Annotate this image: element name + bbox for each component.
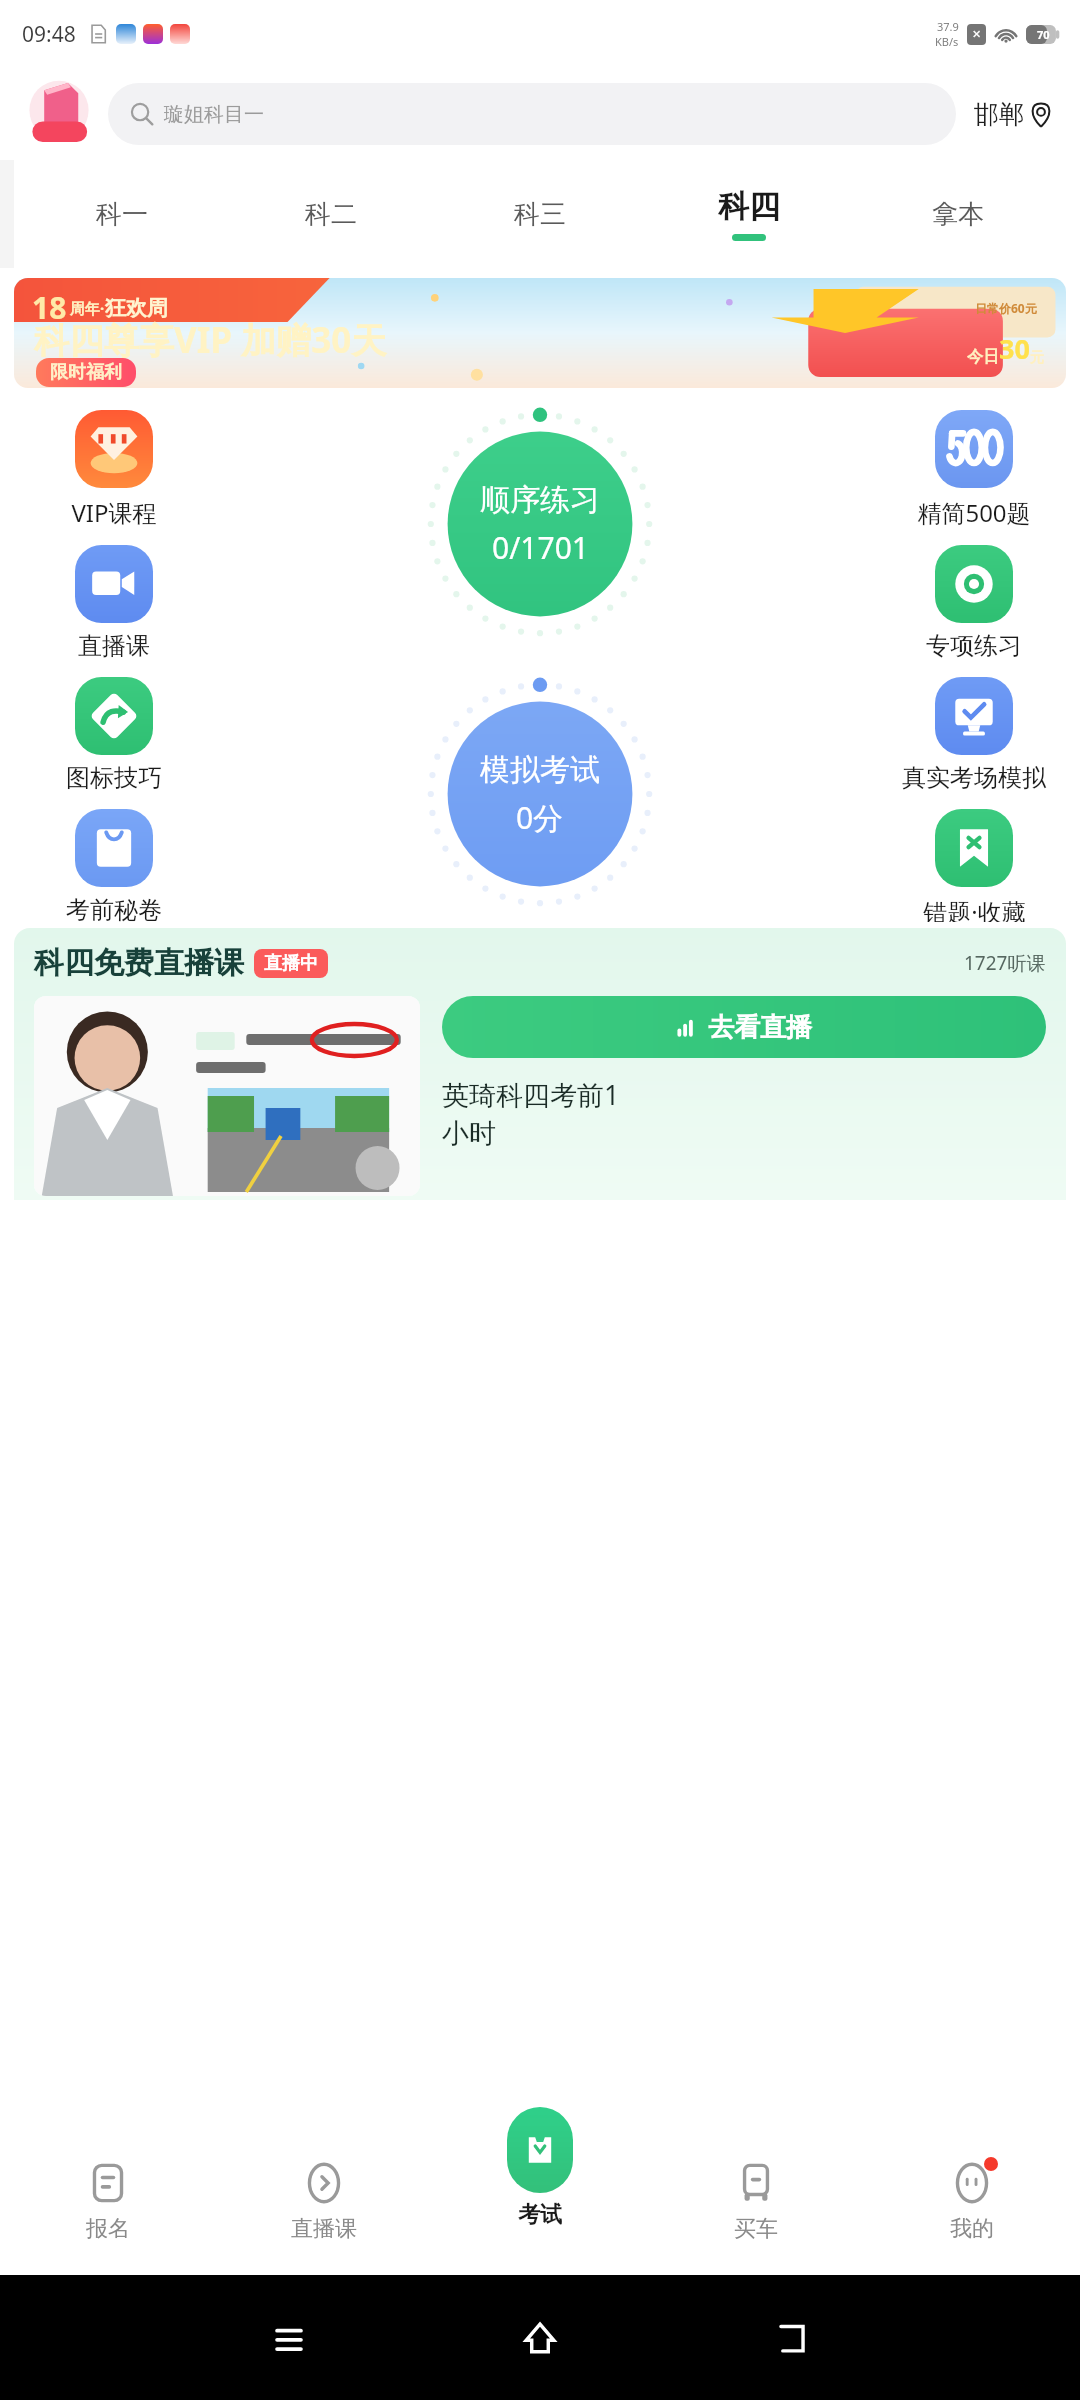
staticText: 买车 bbox=[734, 2215, 778, 2243]
button[interactable]: 报名 bbox=[0, 2125, 216, 2275]
button[interactable]: 图标技巧 bbox=[34, 677, 194, 793]
button[interactable]: 顺序练习 bbox=[420, 404, 660, 644]
button[interactable]: 科三 bbox=[435, 160, 644, 268]
staticText: 模拟考试 bbox=[480, 751, 600, 789]
button[interactable]: 科一 bbox=[18, 160, 226, 268]
staticText: 科四尊享VIP 加赠30天 bbox=[34, 316, 387, 364]
staticText: 元 bbox=[1030, 349, 1044, 367]
staticText: 日常价60元 bbox=[975, 300, 1037, 316]
staticText: 科三 bbox=[514, 198, 566, 231]
button[interactable]: 直播课 bbox=[216, 2125, 432, 2275]
staticText: 70 bbox=[1037, 27, 1050, 42]
staticText: 1727听课 bbox=[964, 950, 1046, 976]
staticText: 去看直播 bbox=[708, 1011, 812, 1044]
staticText: 直播课 bbox=[78, 631, 150, 661]
staticText: 报名 bbox=[86, 2215, 130, 2243]
staticText: 狂欢周 bbox=[105, 295, 168, 321]
button[interactable]: 真实考场模拟 bbox=[894, 677, 1054, 793]
button[interactable]: 模拟考试 bbox=[420, 674, 660, 914]
staticText: 18 bbox=[32, 287, 67, 328]
staticText: 考试 bbox=[518, 2201, 562, 2229]
staticText: 科四免费直播课 bbox=[34, 944, 244, 982]
staticText: 拿本 bbox=[932, 198, 984, 231]
button[interactable]: 科四免费领 bbox=[22, 77, 96, 151]
staticText: 直播中 bbox=[264, 952, 318, 975]
staticText: 精简500题 bbox=[917, 496, 1031, 529]
button[interactable]: 买车 bbox=[648, 2125, 864, 2275]
staticText: 直播课 bbox=[291, 2215, 357, 2243]
staticText: 0分 bbox=[516, 797, 564, 838]
button[interactable]: 科二 bbox=[226, 160, 435, 268]
staticText: VIP课程 bbox=[71, 496, 157, 529]
staticText: 图标技巧 bbox=[66, 763, 162, 793]
button[interactable]: 拿本 bbox=[853, 160, 1062, 268]
staticText: 科四 bbox=[718, 187, 780, 226]
staticText: 璇姐科目一 bbox=[164, 102, 264, 127]
staticText: KB/s bbox=[935, 34, 959, 49]
staticText: 顺序练习 bbox=[480, 481, 600, 519]
staticText: 专项练习 bbox=[926, 631, 1022, 661]
staticText: 37.9 bbox=[937, 19, 959, 34]
button[interactable]: 精简500题 bbox=[894, 410, 1054, 529]
staticText: 真实考场模拟 bbox=[902, 763, 1046, 793]
button[interactable]: 邯郸 bbox=[970, 95, 1058, 134]
staticText: 我的 bbox=[950, 2215, 994, 2243]
button[interactable]: 科四免费直播课 bbox=[14, 928, 1066, 1200]
staticText: 邯郸 bbox=[974, 99, 1024, 130]
button[interactable]: 考试 bbox=[507, 2107, 573, 2229]
button[interactable]: 考前秘卷 bbox=[34, 809, 194, 922]
button[interactable]: 错题·收藏 bbox=[894, 809, 1054, 922]
staticText: 0/1701 bbox=[492, 527, 589, 568]
button[interactable]: 去看直播 bbox=[442, 996, 1046, 1058]
button[interactable]: 直播课 bbox=[34, 545, 194, 661]
button[interactable]: 璇姐科目一 bbox=[108, 83, 956, 145]
button[interactable]: VIP课程 bbox=[34, 410, 194, 529]
button[interactable]: 我的 bbox=[864, 2125, 1080, 2275]
button[interactable]: 18 bbox=[14, 278, 1066, 388]
button[interactable]: 科四 bbox=[644, 160, 853, 268]
staticText: 考前秘卷 bbox=[66, 895, 162, 922]
staticText: 小时 bbox=[442, 1117, 496, 1151]
staticText: ✕ bbox=[972, 28, 982, 41]
staticText: 科一 bbox=[96, 198, 148, 231]
staticText: 科二 bbox=[305, 198, 357, 231]
staticText: 错题·收藏 bbox=[923, 895, 1026, 922]
button[interactable]: 专项练习 bbox=[894, 545, 1054, 661]
staticText: 今日 bbox=[967, 347, 999, 367]
staticText: 限时福利 bbox=[50, 361, 122, 384]
staticText: 周年· bbox=[70, 298, 105, 318]
staticText: 30 bbox=[999, 330, 1030, 367]
staticText: 英琦科四考前1 bbox=[442, 1076, 620, 1113]
staticText: 09:48 bbox=[22, 20, 76, 49]
